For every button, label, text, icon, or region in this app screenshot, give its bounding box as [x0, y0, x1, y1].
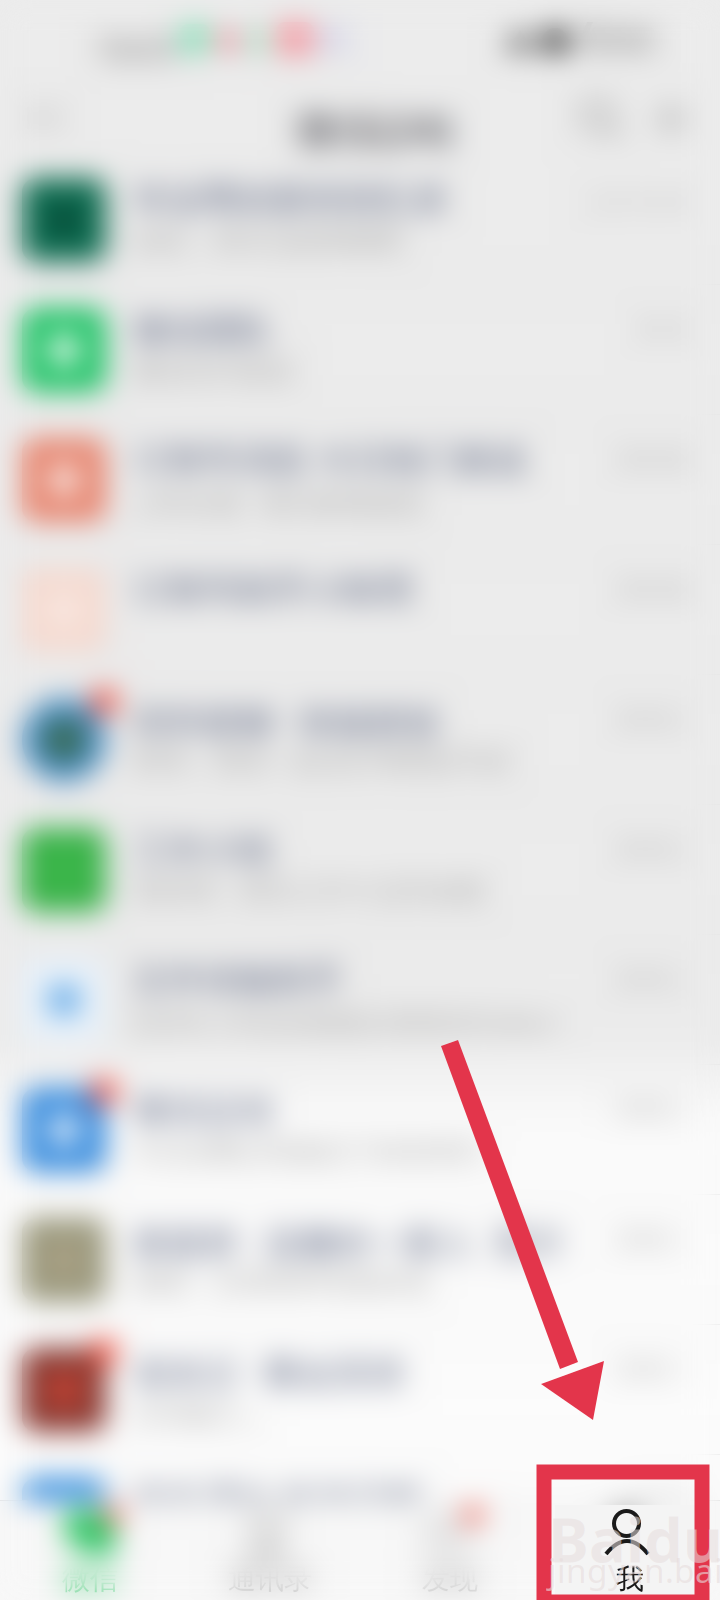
- button[interactable]: 家庭群 · 温馨的一家人 照片: [0, 1195, 720, 1325]
- staticText: 微信: [62, 1562, 118, 1596]
- staticText: 老友记 · 聚会安排: [133, 1349, 405, 1395]
- staticText: 微信团队: [133, 309, 273, 352]
- staticText: 文件传输助手: [133, 959, 343, 1002]
- staticText: 微信运动: [133, 1089, 273, 1132]
- staticText: 今日步数已经超过了好友排行: [133, 1135, 484, 1168]
- staticText: 16:01: [96, 26, 181, 70]
- staticText: 家庭群 · 温馨的一家人 照片: [133, 1219, 565, 1265]
- button[interactable]: 我: [540, 1500, 720, 1600]
- staticText: 我: [616, 1562, 644, 1596]
- button[interactable]: 工作小组: [0, 805, 720, 935]
- staticText: 好的，明天见面再聊吧: [133, 225, 403, 258]
- button[interactable]: 更多: [640, 88, 704, 152]
- staticText: 妈妈：记得按时吃饭休息: [133, 1265, 430, 1298]
- staticText: 订阅号助手小助理: [133, 569, 413, 612]
- button[interactable]: 微信团队: [0, 285, 720, 415]
- button[interactable]: 老友记 · 聚会安排: [0, 1325, 720, 1455]
- staticText: 通讯录: [228, 1562, 312, 1596]
- button[interactable]: 同学群聊 · 班级群组: [0, 675, 720, 805]
- staticText: 正在输入…: [133, 1395, 262, 1430]
- button[interactable]: 微信: [0, 1500, 180, 1600]
- staticText: 我: [616, 1562, 644, 1596]
- button[interactable]: 订阅号助手小助理: [0, 545, 720, 675]
- button[interactable]: 文件传输助手: [0, 935, 720, 1065]
- staticText: 订阅号消息 今日热门推送: [133, 439, 528, 482]
- staticText: 工作小组: [133, 829, 273, 872]
- button[interactable]: 搜索: [572, 88, 636, 152]
- staticText: 发现: [422, 1562, 478, 1596]
- staticText: 阿伟：周末一起去打球吧好不好: [133, 745, 511, 778]
- button[interactable]: 订阅号消息 今日热门推送: [0, 415, 720, 545]
- staticText: 微信支付: [133, 1525, 241, 1558]
- button[interactable]: 毕业季的那些回忆录: [0, 155, 720, 285]
- staticText: jingyan.baidu.com: [548, 1548, 720, 1592]
- button[interactable]: 通讯录: [180, 1500, 360, 1600]
- staticText: Baidu 经验: [548, 1498, 720, 1580]
- staticText: 毕业季的那些回忆录: [133, 179, 448, 222]
- staticText: 微信支付收款: [133, 355, 295, 388]
- button[interactable]: 微信运动: [0, 1065, 720, 1195]
- staticText: 同学群聊 · 班级群组: [133, 699, 440, 745]
- button[interactable]: 发现: [360, 1500, 540, 1600]
- staticText: 微信(24): [296, 101, 452, 156]
- button[interactable]: 我: [540, 1500, 720, 1600]
- button[interactable]: 服务通知 账单提醒: [0, 1455, 720, 1585]
- staticText: 服务通知 账单提醒: [133, 1479, 423, 1522]
